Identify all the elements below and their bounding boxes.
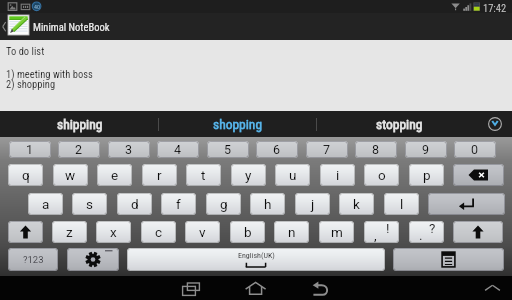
staticText: 1) meeting with boss (6, 68, 93, 80)
staticText: 9 (422, 142, 430, 157)
button[interactable]: 2 (58, 141, 100, 158)
staticText: i (336, 167, 340, 183)
button[interactable]: 4 (157, 141, 199, 158)
staticText: y (245, 167, 252, 183)
staticText: ! (386, 221, 390, 236)
staticText: r (157, 167, 162, 183)
staticText: stopping (376, 116, 423, 132)
button[interactable]: m (319, 221, 354, 243)
staticText: English(UK) (238, 251, 275, 260)
staticText: t (201, 167, 206, 183)
button[interactable]: Enter (428, 193, 505, 215)
button[interactable]: App icon (8, 15, 29, 35)
staticText: z (66, 224, 73, 240)
button[interactable]: e (97, 164, 132, 186)
staticText: c (155, 224, 163, 240)
button[interactable]: a (28, 193, 63, 215)
button[interactable]: Show navigation bar (481, 276, 505, 300)
button[interactable]: Space (127, 248, 385, 271)
button[interactable]: c (141, 221, 176, 243)
staticText: 40 (34, 3, 40, 10)
button[interactable]: o (364, 164, 399, 186)
staticText: q (22, 167, 30, 183)
button[interactable]: l (384, 193, 419, 215)
button[interactable]: shopping (159, 111, 317, 137)
button[interactable]: p (409, 164, 444, 186)
button[interactable]: Clipboard (393, 248, 504, 271)
button[interactable]: r (142, 164, 177, 186)
staticText: u (289, 167, 297, 183)
button[interactable]: w (53, 164, 88, 186)
button[interactable]: q (8, 164, 43, 186)
button[interactable]: shipping (0, 111, 159, 137)
button[interactable]: v (185, 221, 220, 243)
button[interactable]: g (206, 193, 241, 215)
button[interactable]: u (275, 164, 310, 186)
button[interactable]: To do list (0, 40, 512, 111)
button[interactable]: stopping (317, 111, 482, 137)
button[interactable]: 5 (207, 141, 249, 158)
staticText: x (110, 224, 117, 240)
button[interactable]: d (117, 193, 152, 215)
button[interactable]: Recent apps (178, 279, 206, 300)
staticText: ?123 (23, 254, 44, 265)
button[interactable]: t (186, 164, 221, 186)
staticText: 17:42 (483, 2, 507, 14)
button[interactable]: 3 (108, 141, 150, 158)
staticText: 2) shopping (6, 78, 56, 90)
button[interactable]: Shift (8, 221, 43, 243)
button[interactable]: Backspace (453, 164, 504, 186)
staticText: f (176, 196, 181, 212)
staticText: h (264, 196, 272, 212)
staticText: To do list (6, 45, 45, 57)
button[interactable]: y (231, 164, 266, 186)
button[interactable]: Navigate up (0, 13, 9, 40)
button[interactable]: f (161, 193, 196, 215)
staticText: l (400, 196, 404, 212)
button[interactable]: 8 (355, 141, 397, 158)
staticText: 3 (125, 142, 133, 157)
staticText: v (199, 224, 206, 240)
button[interactable]: Period (409, 221, 444, 243)
staticText: . (419, 227, 423, 243)
staticText: Minimal NoteBook (33, 21, 110, 33)
button[interactable]: Home (244, 279, 268, 300)
button[interactable]: s (72, 193, 107, 215)
button[interactable]: n (274, 221, 309, 243)
button[interactable]: x (96, 221, 131, 243)
staticText: k (353, 196, 360, 212)
staticText: p (423, 167, 431, 183)
button[interactable]: ?123 (8, 248, 58, 271)
button[interactable]: b (230, 221, 265, 243)
staticText: d (131, 196, 139, 212)
button[interactable]: h (250, 193, 285, 215)
staticText: m (331, 224, 343, 240)
staticText: 5 (224, 142, 232, 157)
staticText: s (86, 196, 93, 212)
button[interactable]: j (295, 193, 330, 215)
button[interactable]: 1 (9, 141, 51, 158)
staticText: shipping (57, 116, 103, 132)
button[interactable]: 9 (405, 141, 447, 158)
button[interactable]: Shift (453, 221, 503, 243)
staticText: 6 (273, 142, 281, 157)
staticText: 4 (174, 142, 182, 157)
staticText: g (220, 196, 228, 212)
button[interactable]: 7 (306, 141, 348, 158)
button[interactable]: Back (308, 280, 332, 300)
staticText: e (111, 167, 119, 183)
button[interactable]: 6 (256, 141, 298, 158)
button[interactable]: More suggestions (487, 116, 503, 132)
button[interactable]: 0 (454, 141, 496, 158)
staticText: o (378, 167, 386, 183)
staticText: ? (429, 221, 436, 236)
staticText: , (374, 227, 377, 243)
staticText: n (288, 224, 296, 240)
button[interactable]: Comma (364, 221, 399, 243)
staticText: w (65, 167, 76, 183)
button[interactable]: Settings (67, 248, 119, 271)
button[interactable]: i (320, 164, 355, 186)
button[interactable]: k (339, 193, 374, 215)
button[interactable]: z (52, 221, 87, 243)
staticText: 7 (323, 142, 331, 157)
